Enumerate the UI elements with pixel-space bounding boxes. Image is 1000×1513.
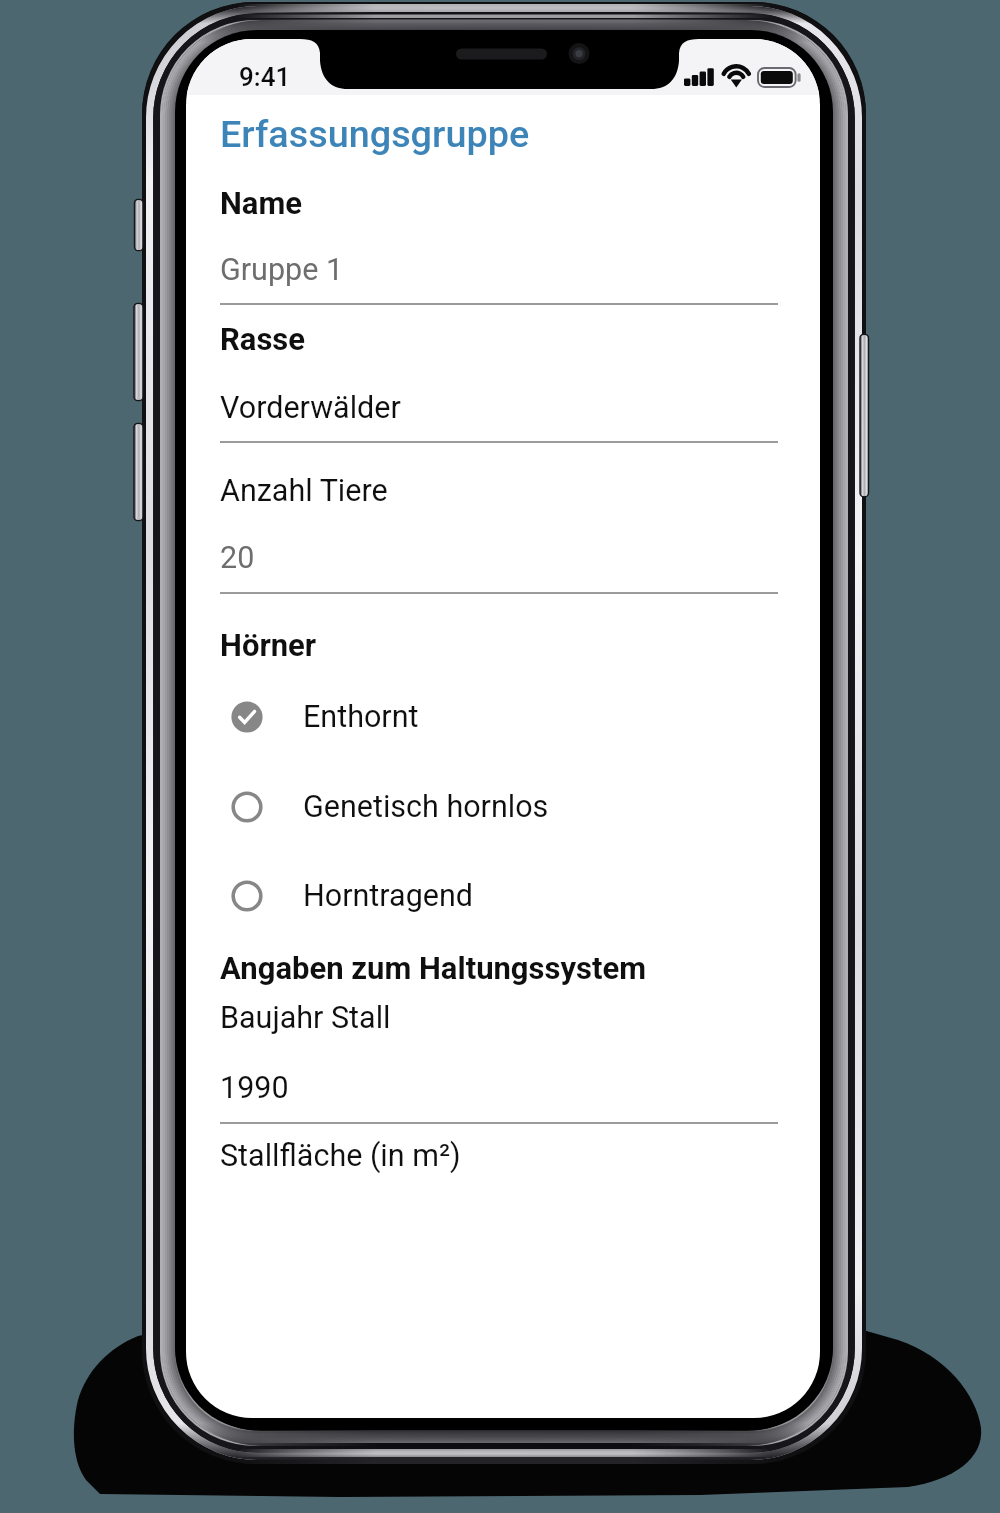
staticText: Genetisch hornlos: [303, 789, 549, 825]
staticText: Name: [220, 185, 303, 221]
button[interactable]: Genetisch hornlos: [228, 763, 778, 851]
button[interactable]: Eingabefeld: [220, 520, 778, 595]
button[interactable]: Horntragend: [228, 852, 778, 940]
staticText: Rasse: [220, 321, 306, 357]
staticText: Angaben zum Haltungssystem: [220, 950, 647, 986]
staticText: Erfassungsgruppe: [220, 112, 530, 156]
staticText: 9:41: [239, 62, 291, 92]
button[interactable]: Eingabefeld: [220, 1130, 778, 1200]
staticText: Enthornt: [303, 699, 419, 735]
button[interactable]: Enthornt: [228, 673, 778, 761]
button[interactable]: Eingabefeld: [220, 1050, 778, 1125]
button[interactable]: Eingabefeld: [220, 370, 778, 444]
staticText: Stallfläche (in m²): [220, 1138, 461, 1174]
staticText: Anzahl Tiere: [220, 473, 388, 509]
staticText: 20: [220, 540, 255, 576]
staticText: Hörner: [220, 627, 317, 663]
button[interactable]: Eingabefeld: [220, 232, 778, 306]
staticText: 1990: [220, 1070, 289, 1106]
staticText: Horntragend: [303, 878, 473, 914]
staticText: Gruppe 1: [220, 252, 344, 288]
staticText: Baujahr Stall: [220, 1000, 391, 1036]
staticText: Vorderwälder: [220, 390, 401, 426]
